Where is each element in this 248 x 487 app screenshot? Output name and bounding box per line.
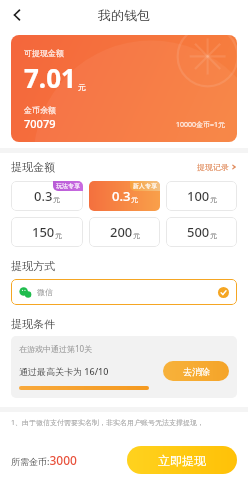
staticText: 金币余额 <box>24 105 56 115</box>
staticText: 元 <box>133 231 140 240</box>
staticText: 提现记录 <box>197 162 229 172</box>
button[interactable]: 提现记录 <box>197 162 237 172</box>
staticText: 在游戏中通过第10关 <box>19 343 93 354</box>
staticText: 通过最高关卡为 16/10 <box>19 365 109 377</box>
staticText: 立即提现 <box>158 453 206 468</box>
button[interactable]: 微信 <box>11 279 237 305</box>
staticText: 150 <box>32 223 55 241</box>
staticText: 提现方式 <box>11 259 55 273</box>
staticText: 500 <box>187 223 210 241</box>
button[interactable]: 100 <box>166 181 237 211</box>
button[interactable]: 可提现金额 <box>11 35 237 142</box>
staticText: 10000金币=1元 <box>176 120 226 130</box>
button[interactable]: 0.3 <box>89 181 160 211</box>
staticText: 元 <box>55 231 62 240</box>
staticText: 1、由于微信支付需要实名制，非实名用户账号无法支撑提现， <box>11 418 205 428</box>
button[interactable]: 去消除 <box>163 361 229 381</box>
button[interactable]: 500 <box>166 217 237 247</box>
button[interactable]: 0.3 <box>11 181 83 211</box>
staticText: 70079 <box>24 116 56 131</box>
staticText: 我的钱包 <box>98 7 150 23</box>
staticText: 元 <box>53 195 60 204</box>
staticText: 去消除 <box>183 366 210 377</box>
staticText: 所需金币:3000 <box>11 452 77 468</box>
button[interactable]: 150 <box>11 217 83 247</box>
staticText: 100 <box>187 187 210 205</box>
staticText: 元 <box>131 195 138 204</box>
staticText: 0.3 <box>34 187 53 205</box>
staticText: 元 <box>210 231 217 240</box>
staticText: 提现金额 <box>11 160 55 174</box>
staticText: 200 <box>110 223 133 241</box>
staticText: 可提现金额 <box>24 48 64 58</box>
button[interactable]: Back <box>4 2 30 28</box>
staticText: 提现条件 <box>11 317 55 331</box>
staticText: 7.01 <box>24 60 76 95</box>
staticText: 元 <box>78 82 86 92</box>
button[interactable]: 200 <box>89 217 160 247</box>
staticText: 微信 <box>37 287 53 297</box>
staticText: 玩法专享 <box>56 182 80 190</box>
staticText: 元 <box>210 195 217 204</box>
staticText: 0.3 <box>112 187 131 205</box>
button[interactable]: 立即提现 <box>127 446 237 474</box>
staticText: 新人专享 <box>133 182 157 190</box>
